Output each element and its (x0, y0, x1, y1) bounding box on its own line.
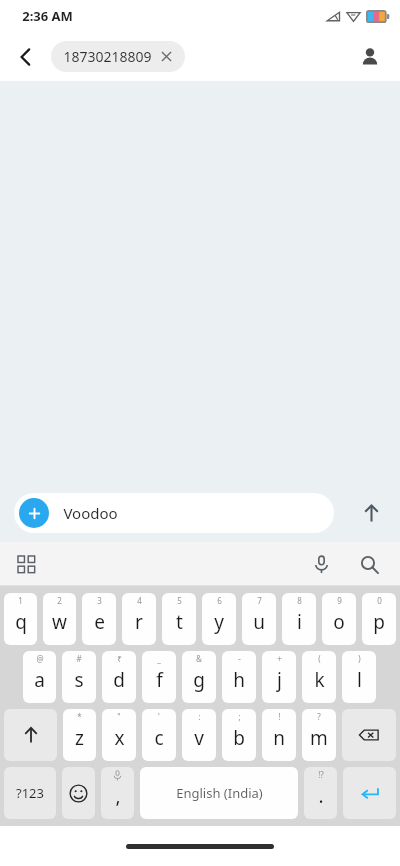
staticText: " (117, 711, 121, 722)
staticText: # (76, 653, 82, 664)
button[interactable]: Enter (343, 767, 396, 819)
button[interactable]: ' (142, 709, 176, 761)
staticText: o (333, 609, 345, 635)
staticText: e (94, 609, 105, 635)
staticText: k (314, 667, 325, 693)
button[interactable]: ? (302, 709, 336, 761)
button[interactable]: Send (350, 492, 392, 534)
button[interactable]: Shift (4, 709, 57, 761)
staticText: English (India) (176, 784, 263, 802)
button[interactable]: English (India) (140, 767, 298, 819)
button[interactable]: 8 (282, 593, 316, 645)
button[interactable]: Backspace (342, 709, 396, 761)
button[interactable]: Back (6, 37, 46, 77)
staticText: t (176, 609, 183, 635)
staticText: l (357, 667, 362, 693)
staticText: ' (158, 711, 160, 722)
staticText: 18730218809 (63, 47, 152, 66)
staticText: ) (358, 653, 361, 664)
staticText: ; (238, 711, 241, 722)
button[interactable]: Emoji (62, 767, 95, 819)
button[interactable]: @ (23, 651, 56, 703)
button[interactable]: 1 (4, 593, 37, 645)
staticText: + (277, 653, 282, 664)
staticText: n (273, 725, 285, 751)
staticText: p (373, 609, 385, 635)
button[interactable]: Search (350, 545, 388, 583)
staticText: 2:36 AM (22, 7, 73, 25)
staticText: ( (318, 653, 321, 664)
staticText: ! (278, 711, 281, 722)
button[interactable]: Voice input (302, 545, 340, 583)
staticText: ?123 (16, 784, 44, 802)
button[interactable]: " (102, 709, 136, 761)
staticText: u (253, 609, 265, 635)
staticText: 3 (97, 595, 102, 606)
staticText: 7 (257, 595, 262, 606)
button[interactable]: Contact (350, 37, 390, 77)
staticText: 4 (137, 595, 142, 606)
staticText: h (233, 667, 245, 693)
button[interactable]: 5 (162, 593, 196, 645)
button[interactable]: 7 (242, 593, 276, 645)
staticText: f (156, 667, 163, 693)
staticText: , (115, 783, 121, 809)
button[interactable]: Add attachment (14, 493, 334, 533)
staticText: x (114, 725, 125, 751)
staticText: r (135, 609, 143, 635)
staticText: & (196, 653, 202, 664)
staticText: w (52, 609, 67, 635)
staticText: d (113, 667, 125, 693)
button[interactable]: ?123 (4, 767, 56, 819)
staticText: v (194, 725, 204, 751)
button[interactable]: : (182, 709, 216, 761)
button[interactable]: 4 (122, 593, 156, 645)
button[interactable]: 0 (362, 593, 396, 645)
button[interactable]: 6 (202, 593, 236, 645)
staticText: 9 (337, 595, 342, 606)
staticText: ₹ (117, 653, 122, 664)
button[interactable]: ₹ (102, 651, 136, 703)
button[interactable]: 9 (322, 593, 356, 645)
button[interactable]: ) (342, 651, 376, 703)
button[interactable]: * (63, 709, 96, 761)
staticText: g (193, 667, 205, 693)
staticText: - (238, 653, 241, 664)
button[interactable]: Add attachment (19, 498, 49, 528)
button[interactable]: ! (262, 709, 296, 761)
button[interactable]: , (101, 767, 134, 819)
button[interactable]: ; (222, 709, 256, 761)
staticText: y (214, 609, 224, 635)
staticText: q (15, 609, 27, 635)
button[interactable]: !? (304, 767, 337, 819)
staticText: _ (157, 653, 161, 664)
staticText: 1 (18, 595, 23, 606)
staticText: Voodoo (63, 503, 118, 523)
button[interactable]: _ (142, 651, 176, 703)
button[interactable]: # (62, 651, 96, 703)
button[interactable]: & (182, 651, 216, 703)
staticText: 0 (377, 595, 382, 606)
staticText: ? (317, 711, 321, 722)
staticText: !? (318, 769, 324, 780)
staticText: @ (36, 653, 44, 664)
staticText: z (75, 725, 84, 751)
staticText: b (233, 725, 245, 751)
staticText: i (297, 609, 302, 635)
staticText: 8 (297, 595, 302, 606)
button[interactable]: Keyboard options (8, 546, 44, 582)
staticText: a (34, 667, 45, 693)
staticText: : (198, 711, 201, 722)
button[interactable]: 2 (43, 593, 76, 645)
button[interactable]: ( (302, 651, 336, 703)
staticText: j (277, 667, 282, 693)
staticText: . (318, 783, 324, 809)
staticText: * (77, 711, 82, 722)
staticText: 2 (57, 595, 62, 606)
button[interactable]: 18730218809 (51, 41, 185, 72)
staticText: 6 (217, 595, 222, 606)
button[interactable]: - (222, 651, 256, 703)
staticText: s (74, 667, 84, 693)
button[interactable]: 3 (82, 593, 116, 645)
button[interactable]: + (262, 651, 296, 703)
